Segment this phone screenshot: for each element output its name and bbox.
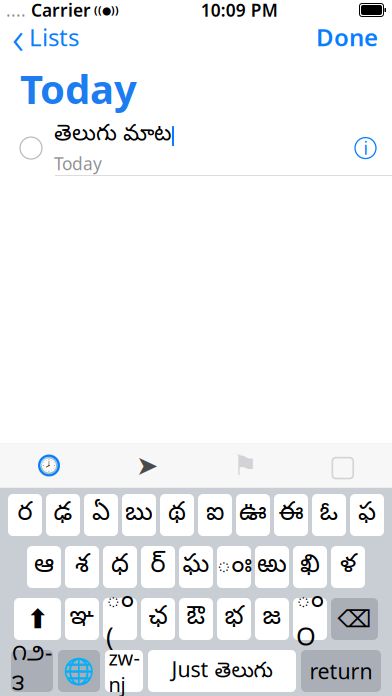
- button[interactable]: ఆ: [27, 546, 61, 588]
- button[interactable]: 🌐: [58, 650, 100, 692]
- button[interactable]: ం(: [103, 598, 137, 640]
- button[interactable]: ఖి: [293, 546, 327, 588]
- button[interactable]: Remind me at a time: [0, 443, 98, 487]
- staticText: భ: [224, 602, 243, 636]
- button[interactable]: ఫ: [350, 494, 384, 536]
- button[interactable]: Remind me at a location: [98, 443, 196, 487]
- staticText: ఏ: [92, 498, 110, 532]
- staticText: ం(: [106, 585, 134, 652]
- button[interactable]: జ: [255, 598, 289, 640]
- button[interactable]: థ: [160, 494, 194, 536]
- staticText: శ: [75, 550, 89, 584]
- staticText: 🕗: [39, 456, 59, 475]
- button[interactable]: zwnj: [105, 650, 143, 692]
- staticText: ఢ: [53, 498, 72, 532]
- button[interactable]: ర: [8, 494, 42, 536]
- button[interactable]: Flag: [196, 443, 294, 487]
- button[interactable]: శ: [65, 546, 99, 588]
- button[interactable]: ర్: [141, 546, 175, 588]
- staticText: Today: [54, 152, 102, 175]
- staticText: ....: [6, 0, 26, 21]
- staticText: జ: [262, 602, 281, 636]
- staticText: Lists: [29, 21, 79, 53]
- staticText: ⚑: [232, 450, 257, 481]
- button[interactable]: ఈ: [274, 494, 308, 536]
- staticText: ➤: [136, 450, 158, 481]
- button[interactable]: Just తెలుగు: [148, 650, 296, 692]
- button[interactable]: ధ: [103, 546, 137, 588]
- button[interactable]: ఘ: [179, 546, 213, 588]
- staticText: Carrier: [26, 0, 91, 21]
- button[interactable]: ఏ: [84, 494, 118, 536]
- button[interactable]: ఊ: [236, 494, 270, 536]
- button[interactable]: ళ: [331, 546, 365, 588]
- staticText: ఞ: [69, 602, 94, 636]
- staticText: 10:09 PM: [201, 0, 278, 21]
- staticText: ఊ: [239, 498, 267, 532]
- staticText: ఖి: [300, 550, 320, 584]
- staticText: ఆ: [34, 550, 54, 584]
- staticText: ంO: [296, 585, 324, 652]
- button[interactable]: ‹: [0, 20, 91, 54]
- staticText: ‹: [12, 7, 24, 67]
- staticText: ⌫: [337, 605, 371, 633]
- staticText: 🌐: [63, 656, 95, 685]
- staticText: ⬆: [26, 604, 48, 634]
- staticText: ఈ: [278, 498, 303, 532]
- button[interactable]: Details: [339, 126, 392, 170]
- button[interactable]: Complete reminder: [0, 126, 54, 170]
- staticText: ర్: [150, 550, 165, 584]
- button[interactable]: ౧౨౩: [11, 650, 53, 692]
- button[interactable]: ఞ: [65, 598, 99, 640]
- staticText: తెలుగు మాట: [54, 121, 171, 151]
- button[interactable]: ఛ: [141, 598, 175, 640]
- staticText: ళ: [340, 550, 356, 584]
- button[interactable]: ఔ: [179, 598, 213, 640]
- staticText: Today: [20, 62, 137, 115]
- button[interactable]: భ: [217, 598, 251, 640]
- button[interactable]: బు: [122, 494, 156, 536]
- button[interactable]: Camera: [294, 443, 392, 487]
- staticText: ఐ: [206, 498, 224, 532]
- staticText: zwnj: [108, 644, 139, 696]
- button[interactable]: ఢ: [46, 494, 80, 536]
- button[interactable]: ఱు: [255, 546, 289, 588]
- staticText: i: [363, 137, 367, 160]
- staticText: ((●)): [91, 3, 119, 17]
- staticText: ఘ: [182, 550, 209, 584]
- staticText: ఱు: [257, 550, 287, 584]
- staticText: ఫ: [358, 498, 376, 532]
- staticText: థ: [168, 498, 186, 532]
- button[interactable]: Done: [302, 20, 392, 54]
- staticText: Done: [316, 21, 378, 53]
- staticText: Just తెలుగు: [171, 655, 272, 687]
- staticText: ఔ: [186, 602, 205, 636]
- button[interactable]: ంః: [217, 546, 251, 588]
- staticText: ▢: [329, 449, 357, 482]
- staticText: ంః: [216, 550, 251, 584]
- staticText: ర: [17, 498, 32, 532]
- button[interactable]: return: [301, 650, 381, 692]
- button[interactable]: ఓ: [312, 494, 346, 536]
- button[interactable]: ంO: [293, 598, 327, 640]
- staticText: return: [309, 657, 372, 685]
- staticText: ఛ: [148, 602, 167, 636]
- button[interactable]: ⬆: [14, 598, 61, 640]
- button[interactable]: ⌫: [331, 598, 378, 640]
- staticText: ఓ: [319, 498, 338, 532]
- staticText: ౧౨౩: [12, 641, 52, 696]
- staticText: బు: [125, 498, 153, 532]
- button[interactable]: ఐ: [198, 494, 232, 536]
- staticText: ధ: [111, 550, 129, 584]
